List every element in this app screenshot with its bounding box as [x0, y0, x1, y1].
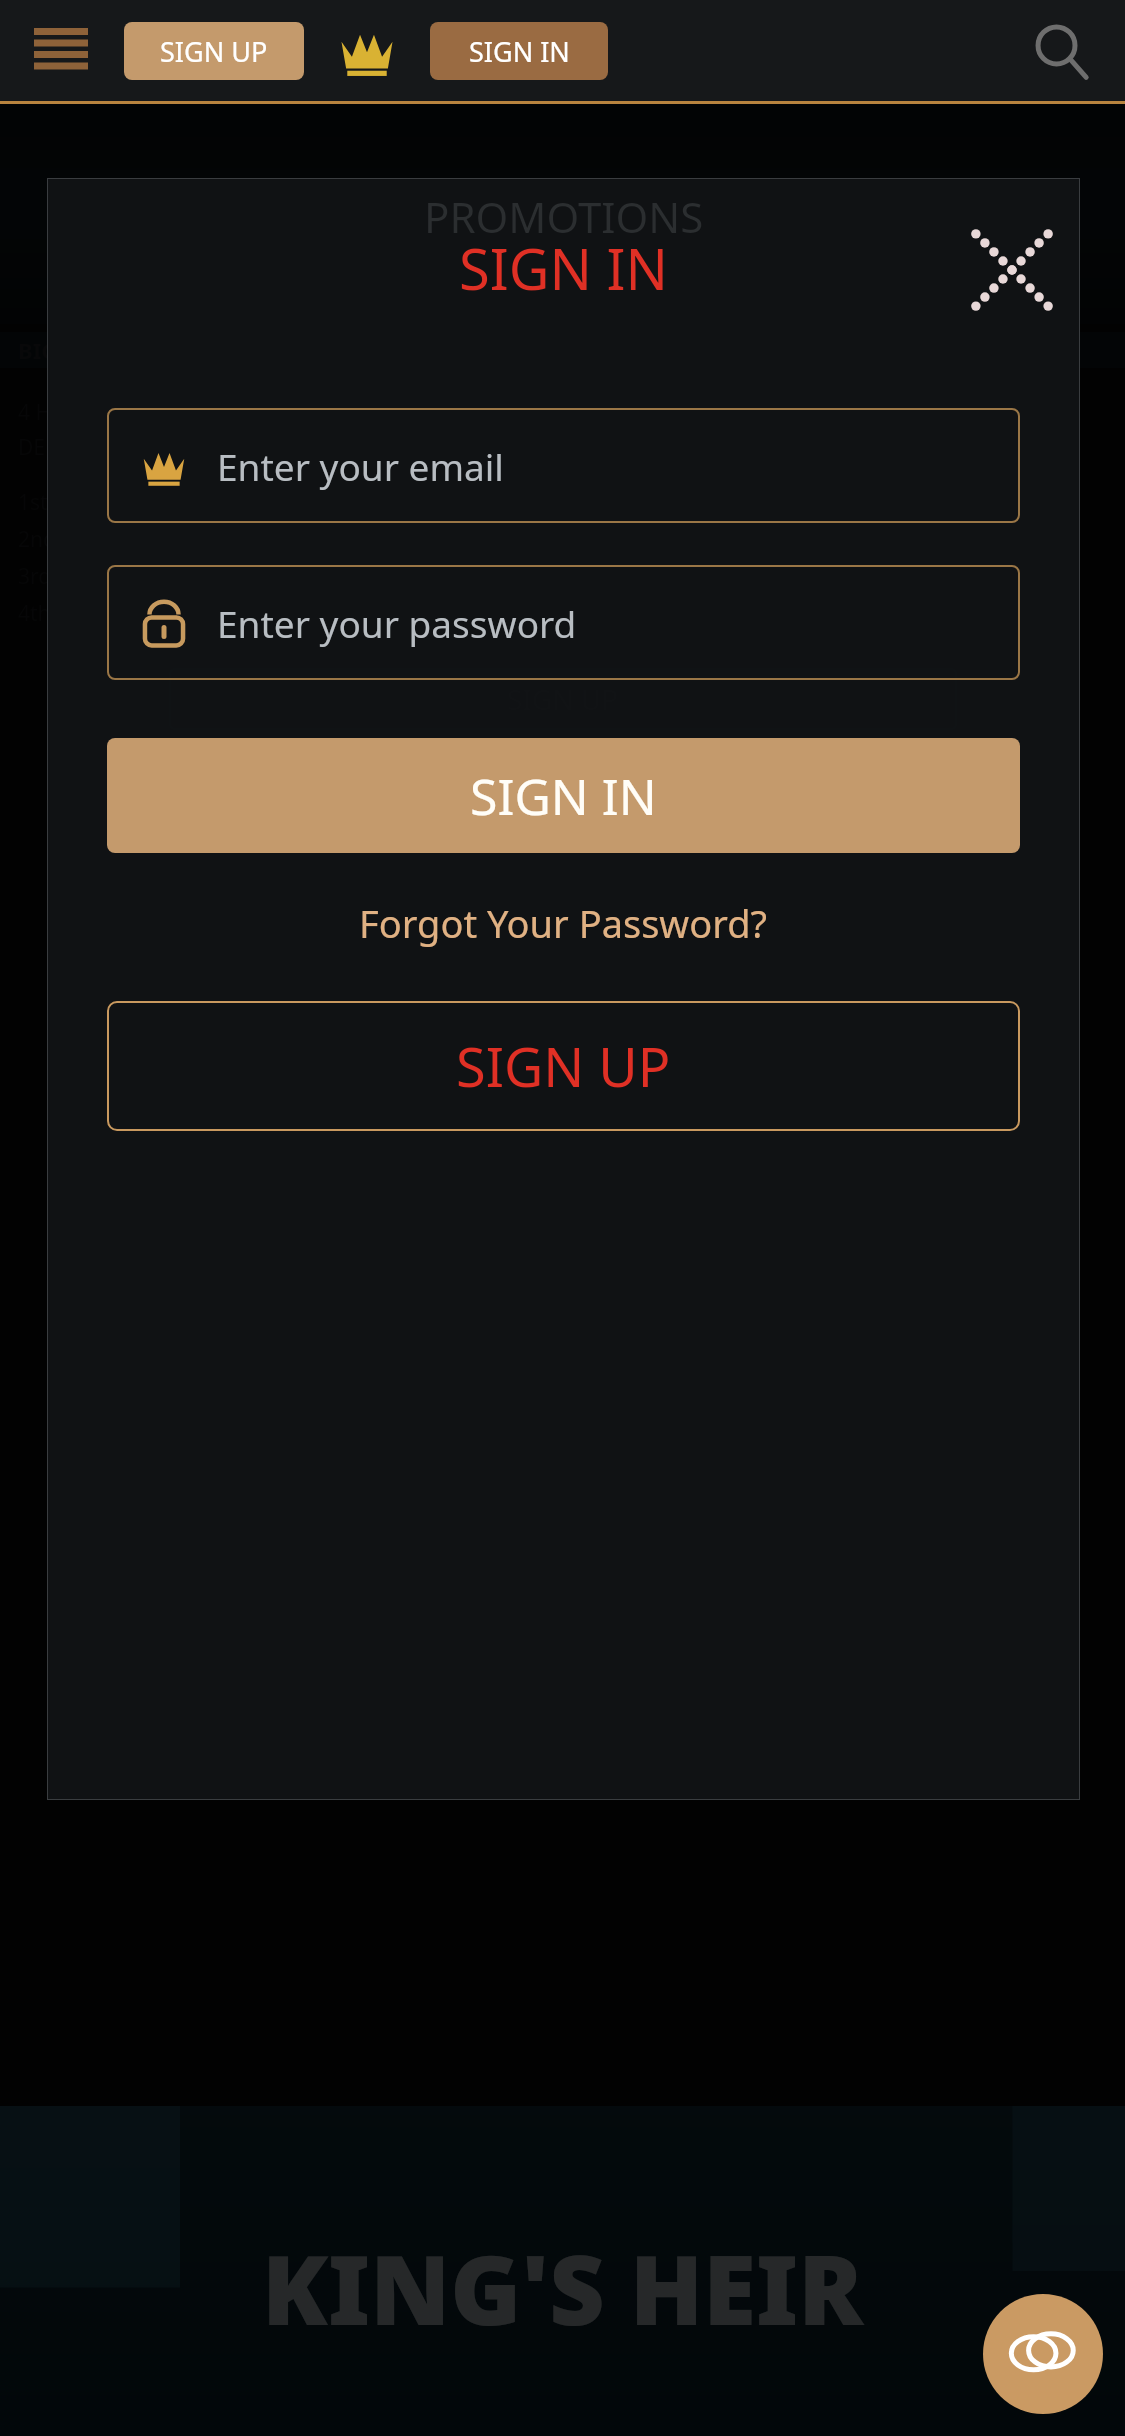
staticText: PROMOTIONS	[424, 188, 704, 245]
button[interactable]: SIGN IN	[430, 22, 608, 80]
button[interactable]: Close	[964, 222, 1060, 318]
button[interactable]: Forgot Your Password?	[359, 897, 768, 949]
button[interactable]: Enter your email	[107, 408, 1020, 523]
staticText: SIGN IN	[470, 762, 657, 830]
button[interactable]: SIGN IN	[107, 738, 1020, 853]
staticText: Enter your password	[217, 598, 577, 648]
button[interactable]: SIGN UP	[169, 668, 957, 730]
staticText: SIGN IN	[469, 33, 570, 70]
staticText: SIGN UP	[456, 1029, 671, 1103]
button[interactable]: Chat support	[983, 2294, 1103, 2414]
button[interactable]: Search	[1023, 13, 1099, 89]
staticText: Enter your email	[217, 441, 504, 491]
staticText: BIG 4 WELCOME BONUSES	[18, 335, 300, 365]
staticText: SIGN IN	[459, 230, 669, 306]
button[interactable]: SIGN UP	[107, 1001, 1020, 1131]
staticText: 1st deposit - 100% up to €/$ 200 + 200 f…	[18, 488, 495, 517]
staticText: SIGN UP	[160, 33, 268, 70]
staticText: 2nd deposit - 50% up to €/$ 200	[18, 525, 330, 554]
button[interactable]: SIGN UP	[124, 22, 304, 80]
staticText: KING'S HEIR	[262, 2222, 864, 2353]
staticText: UP TO €/$ 1000	[390, 183, 735, 246]
staticText: DEPOSITS: €/$ 1000 BONUS + 200 FREE SPIN…	[18, 433, 473, 462]
staticText: 4th deposit - 25% up to €/$ 300	[18, 599, 325, 628]
button[interactable]: Home	[330, 14, 404, 88]
button[interactable]: Bonus Terms & conditions	[379, 754, 747, 795]
button[interactable]: Enter your password	[107, 565, 1020, 680]
staticText: 4 HUGE WELCOME BONUSES FOR YOUR FIRST 4	[18, 398, 487, 427]
button[interactable]: Menu	[26, 16, 96, 86]
staticText: 3rd deposit - 25% up to €/$ 300	[18, 562, 326, 591]
